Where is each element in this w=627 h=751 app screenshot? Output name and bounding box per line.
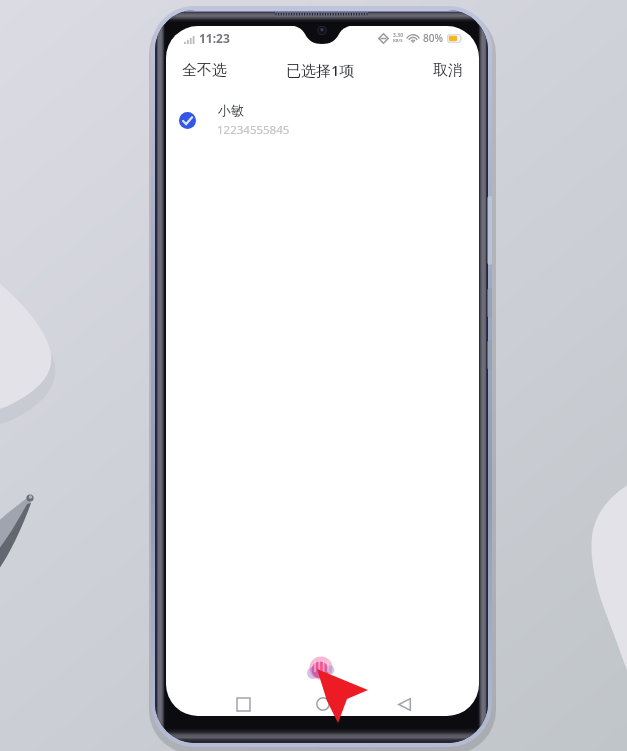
button[interactable]: 小敏 <box>166 90 479 150</box>
staticText: 取消 <box>433 61 463 80</box>
button[interactable]: 全不选 <box>166 52 243 89</box>
staticText: 11:23 <box>199 30 230 46</box>
staticText: 全不选 <box>182 61 227 80</box>
staticText: 已选择1项 <box>286 60 355 80</box>
button[interactable]: Home <box>309 692 337 716</box>
staticText: KB/S <box>393 38 403 44</box>
staticText: 80% <box>423 31 443 45</box>
staticText: 小敏 <box>218 102 244 118</box>
staticText: 12234555845 <box>217 122 290 138</box>
button[interactable]: Back <box>390 692 418 716</box>
button[interactable]: 取消 <box>417 52 479 89</box>
staticText: 3.30 <box>393 32 403 39</box>
button[interactable]: Recent apps <box>229 692 257 716</box>
